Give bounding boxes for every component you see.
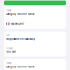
staticText: Товар — [6, 62, 11, 64]
staticText: Latigua, Online Now — [6, 12, 34, 15]
staticText: Latigua, Online Now — [6, 65, 34, 68]
staticText: Объем — [6, 47, 13, 50]
button[interactable]: Status banner — [4, 1, 66, 5]
staticText: Тип — [6, 34, 9, 37]
staticText: Гидравлическая жид — [6, 37, 35, 41]
staticText: Товар — [6, 9, 11, 12]
staticText: Франция — [11, 22, 23, 25]
staticText: 100 мл — [6, 50, 16, 53]
